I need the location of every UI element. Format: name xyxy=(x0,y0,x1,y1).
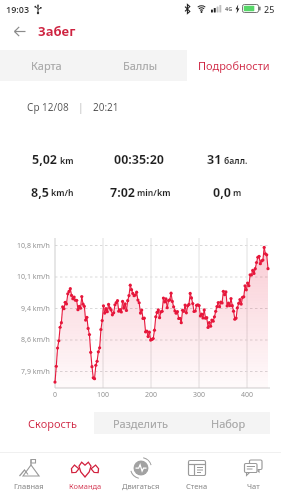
staticText: Стена xyxy=(186,481,208,491)
button[interactable]: Набор xyxy=(187,412,270,434)
staticText: 10,1 km/h xyxy=(17,272,50,282)
staticText: Баллы xyxy=(123,58,158,73)
button[interactable]: Команда xyxy=(57,453,113,500)
button[interactable]: Чат xyxy=(225,453,281,500)
staticText: 5,02 xyxy=(32,151,58,168)
staticText: 9,4 km/h xyxy=(21,304,50,314)
staticText: Главная xyxy=(14,481,44,491)
button[interactable]: Подробности xyxy=(187,50,281,81)
staticText: 100 xyxy=(97,390,110,400)
staticText: Карта xyxy=(31,58,62,73)
staticText: 8,6 km/h xyxy=(21,335,50,345)
button[interactable]: Скорость xyxy=(0,412,94,434)
staticText: Двигаться xyxy=(122,481,160,491)
staticText: Команда xyxy=(69,481,102,491)
staticText: 25 xyxy=(264,3,275,15)
staticText: 200 xyxy=(145,390,158,400)
staticText: 0,0 xyxy=(213,184,231,200)
button[interactable]: Разделить xyxy=(94,412,187,434)
staticText: Забег xyxy=(38,22,76,40)
button[interactable]: Стена xyxy=(169,453,225,500)
button[interactable]: Баллы xyxy=(93,50,187,81)
button[interactable] xyxy=(11,22,29,40)
staticText: 4G xyxy=(225,5,233,12)
staticText: Разделить xyxy=(113,416,168,431)
staticText: Чат xyxy=(247,481,260,491)
staticText: 10,8 km/h xyxy=(17,241,50,251)
staticText: Подробности xyxy=(198,58,270,73)
button[interactable]: Карта xyxy=(0,50,93,81)
staticText: 400 xyxy=(241,390,254,400)
staticText: 00:35:20 xyxy=(114,151,164,168)
staticText: 20:21 xyxy=(93,100,119,114)
staticText: | xyxy=(78,100,84,114)
staticText: 300 xyxy=(193,390,206,400)
staticText: 19:03 xyxy=(6,3,30,15)
staticText: min/km xyxy=(137,187,171,199)
staticText: 8,5 xyxy=(31,184,49,200)
staticText: 7:02 xyxy=(110,184,135,200)
button[interactable]: Главная xyxy=(0,453,57,500)
staticText: 0 xyxy=(53,390,58,400)
staticText: Скорость xyxy=(28,416,77,431)
staticText: Ср 12/08 xyxy=(27,100,69,114)
staticText: km/h xyxy=(51,187,74,199)
staticText: m xyxy=(233,187,242,199)
staticText: Набор xyxy=(211,416,246,431)
staticText: балл. xyxy=(224,155,248,167)
staticText: km xyxy=(60,155,74,167)
staticText: 7,9 km/h xyxy=(21,367,50,377)
staticText: 31 xyxy=(207,151,222,168)
button[interactable]: Двигаться xyxy=(113,453,169,500)
